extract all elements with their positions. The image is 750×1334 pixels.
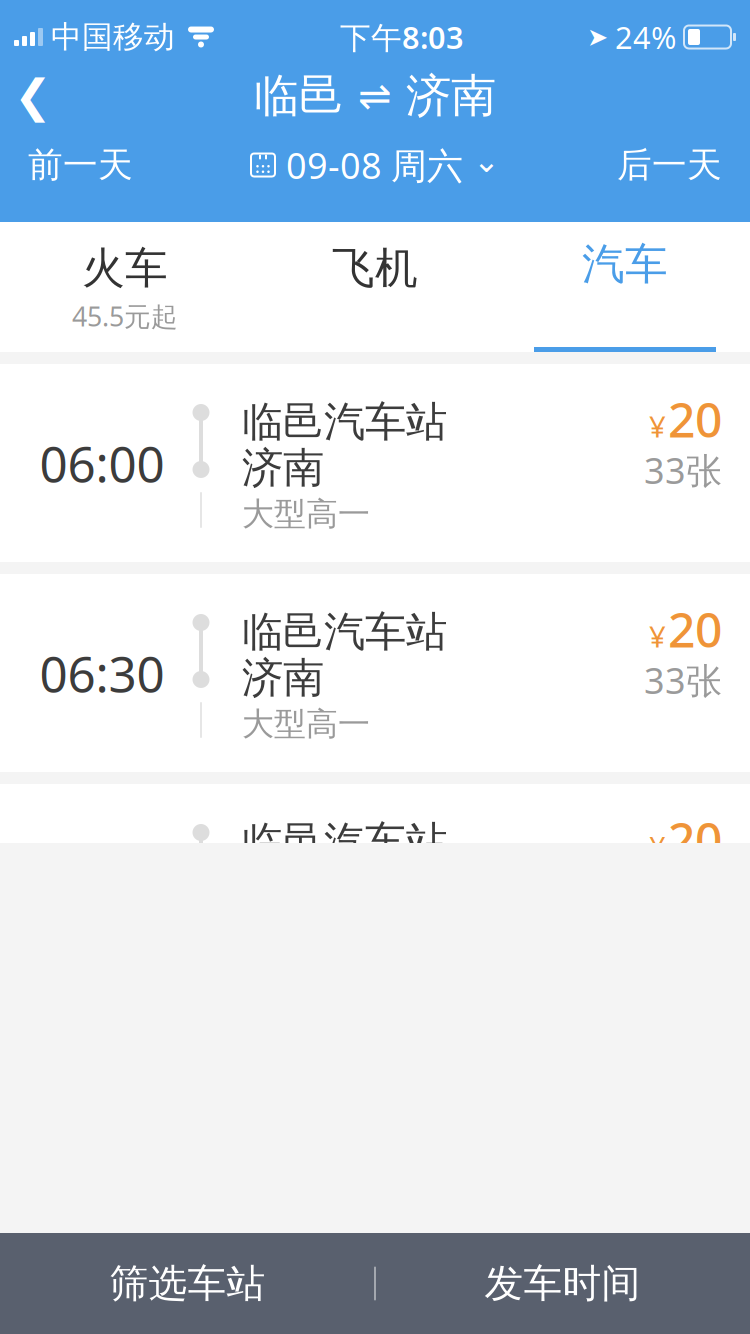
button[interactable]: 筛选车站	[0, 1233, 375, 1334]
button[interactable]: 发车时间	[375, 1233, 750, 1334]
staticText: 筛选车站	[109, 1260, 265, 1307]
button[interactable]: 06:00	[0, 364, 750, 562]
staticText: 济南	[242, 653, 324, 703]
staticText: ❮	[14, 70, 52, 122]
staticText: 临邑汽车站	[242, 817, 447, 867]
button[interactable]: 飞机	[250, 222, 500, 352]
staticText: ⇌	[358, 73, 392, 119]
staticText: 20	[668, 1227, 722, 1291]
button[interactable]: 火车	[0, 222, 250, 352]
staticText: ¥	[649, 617, 666, 656]
button[interactable]: 返回	[0, 64, 66, 128]
staticText: 临邑汽车站	[242, 397, 447, 447]
staticText: 大型高一	[242, 494, 370, 534]
staticText: 火车	[82, 242, 168, 294]
staticText: 前一天	[28, 144, 133, 186]
button[interactable]: 06:30	[0, 574, 750, 772]
staticText: 临邑汽车站	[242, 607, 447, 657]
staticText: 发车时间	[484, 1260, 640, 1307]
staticText: ➤	[587, 23, 608, 51]
staticText: 汽车	[582, 238, 668, 290]
staticText: 06:30	[39, 640, 164, 706]
staticText: 20	[668, 597, 722, 661]
staticText: 济南	[406, 68, 496, 124]
button[interactable]: 后一天	[589, 133, 750, 197]
button[interactable]: 09-08 周六	[234, 133, 516, 197]
button[interactable]: 汽车	[500, 222, 750, 352]
staticText: ¥	[649, 407, 666, 446]
button[interactable]: 07:30	[0, 1204, 750, 1334]
staticText: 45.5元起	[72, 298, 178, 334]
staticText: ¥	[649, 827, 666, 866]
staticText: 07:30	[39, 1270, 164, 1334]
staticText: 下午8:03	[340, 17, 464, 57]
staticText: 济南	[242, 443, 324, 493]
staticText: 临邑	[254, 68, 344, 124]
staticText: 09-08 周六	[286, 141, 463, 189]
staticText: 20	[668, 387, 722, 451]
button[interactable]: 前一天	[0, 133, 161, 197]
staticText: 33张	[644, 656, 722, 704]
staticText: 24%	[615, 17, 676, 57]
staticText: ⌄	[473, 143, 500, 179]
staticText: 20	[668, 807, 722, 871]
staticText: 临邑汽车站	[242, 1237, 447, 1287]
staticText: 大型高一	[242, 704, 370, 744]
staticText: 中国移动	[51, 18, 175, 56]
staticText: 后一天	[617, 144, 722, 186]
staticText: 济南	[242, 1283, 324, 1333]
staticText: 33张	[644, 446, 722, 494]
staticText: 06:00	[39, 430, 164, 496]
button[interactable]: 06:50	[0, 784, 750, 982]
staticText: 飞机	[332, 242, 418, 294]
